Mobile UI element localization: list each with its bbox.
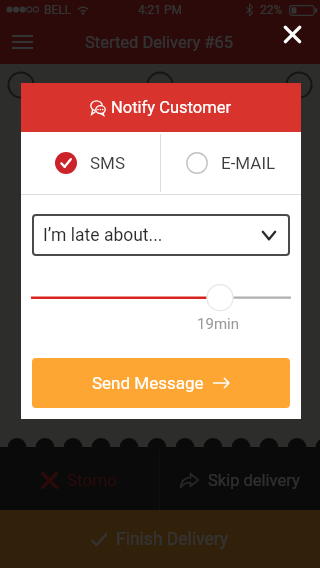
button[interactable]: Send Message [32, 358, 290, 408]
staticText: BELL [44, 3, 72, 17]
staticText: Notify Customer [111, 98, 232, 117]
staticText: Sterted Delivery #65 [85, 33, 234, 52]
staticText: 4:21 PM [110, 3, 210, 17]
button[interactable]: SMS [21, 132, 160, 194]
button[interactable]: Menu [2, 22, 42, 62]
button[interactable]: Skip delivery [160, 450, 320, 510]
staticText: Skip delivery [208, 471, 300, 490]
button[interactable]: I’m late about... [32, 214, 290, 256]
staticText: 22% [260, 3, 283, 17]
staticText: Send Message [92, 373, 204, 393]
staticText: 19min [183, 315, 253, 333]
staticText: Finish Delivery [116, 529, 229, 550]
button[interactable]: Storno [0, 450, 159, 510]
button[interactable]: E-MAIL [161, 132, 301, 194]
staticText: SMS [90, 153, 126, 173]
button[interactable]: Close [272, 14, 312, 54]
staticText: Storno [67, 470, 118, 490]
button[interactable]: Finish Delivery [0, 510, 320, 568]
staticText: I’m late about... [43, 225, 163, 246]
staticText: E-MAIL [221, 153, 276, 173]
